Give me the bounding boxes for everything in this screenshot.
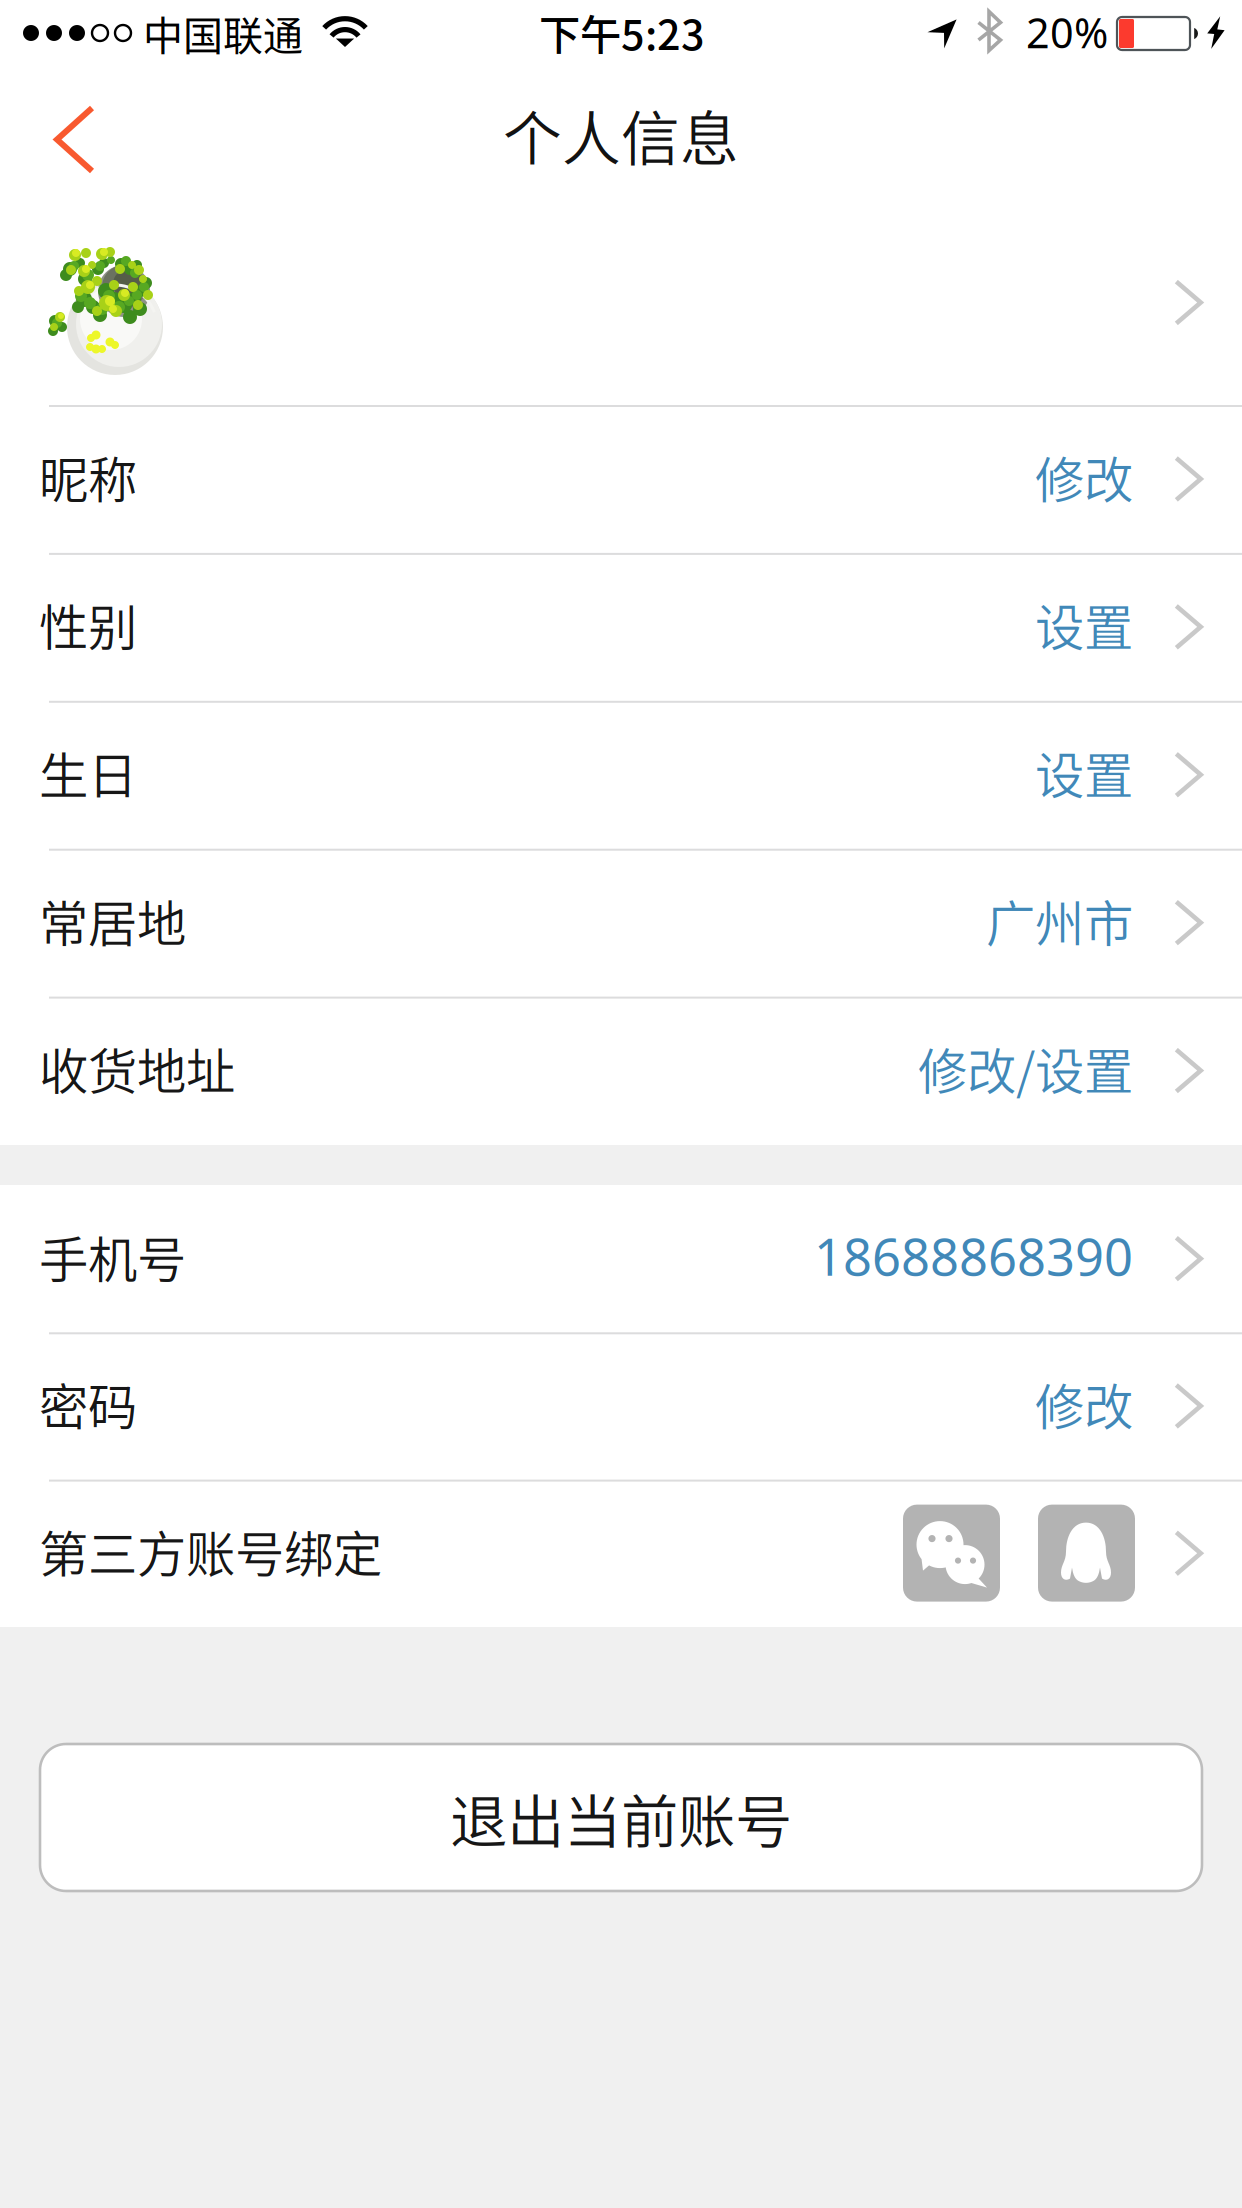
button[interactable]: 密码 (0, 1332, 1242, 1480)
button[interactable]: 性别 (0, 553, 1242, 701)
staticText: 性别 (39, 589, 137, 660)
staticText: 设置 (1035, 589, 1133, 660)
staticText: 修改 (1035, 441, 1133, 512)
staticText: 个人信息 (503, 92, 739, 177)
button[interactable]: 昵称 (0, 405, 1242, 553)
staticText: 手机号 (39, 1220, 186, 1292)
staticText: 收货地址 (39, 1032, 235, 1104)
staticText: 20% (1026, 4, 1108, 60)
staticText: 下午5:23 (539, 2, 705, 62)
button[interactable]: Back (0, 60, 150, 200)
staticText: 修改 (1035, 1368, 1133, 1439)
staticText: 修改/设置 (918, 1032, 1133, 1104)
button[interactable]: 手机号 (0, 1185, 1242, 1332)
staticText: 18688868390 (814, 1222, 1133, 1291)
staticText: 昵称 (39, 441, 137, 512)
button[interactable]: 常居地 (0, 849, 1242, 997)
staticText: 生日 (39, 736, 137, 808)
button[interactable]: 退出当前账号 (40, 1744, 1202, 1891)
staticText: 密码 (39, 1368, 137, 1439)
staticText: 中国联通 (143, 4, 303, 62)
staticText: 常居地 (39, 884, 186, 956)
button[interactable]: 第三方账号绑定 (0, 1480, 1242, 1627)
staticText: 第三方账号绑定 (39, 1515, 382, 1586)
button[interactable]: Profile photo (0, 200, 1242, 405)
button[interactable]: 生日 (0, 701, 1242, 849)
staticText: 设置 (1035, 736, 1133, 808)
staticText: 广州市 (986, 884, 1133, 956)
button[interactable]: 收货地址 (0, 997, 1242, 1144)
staticText: 退出当前账号 (450, 1776, 792, 1859)
